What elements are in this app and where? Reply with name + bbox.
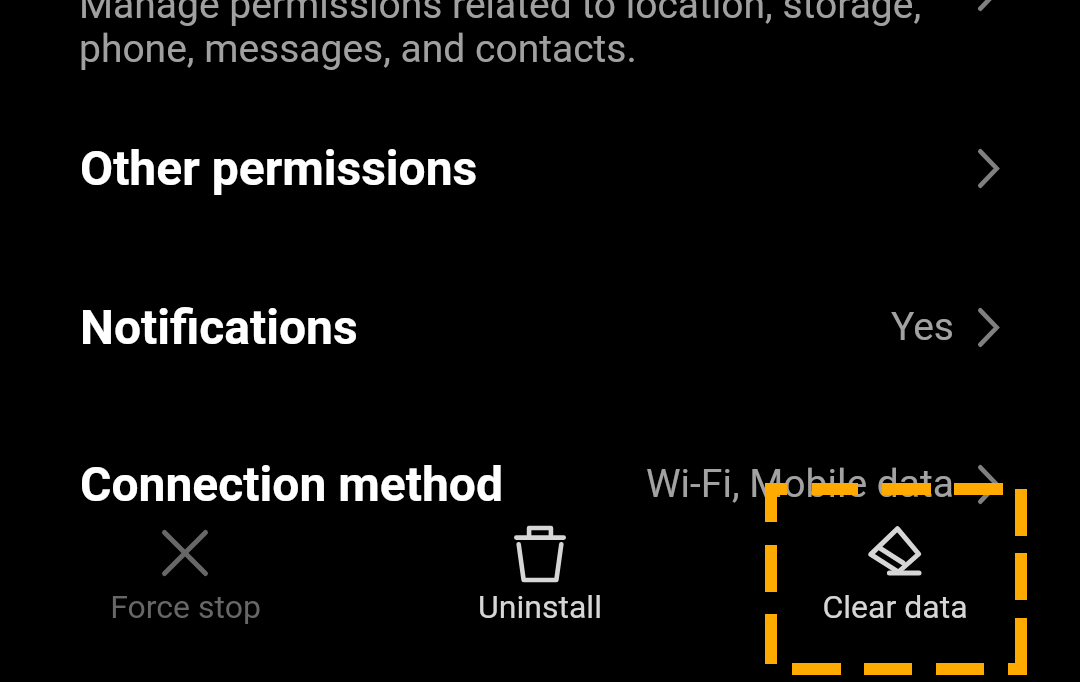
staticText: Clear data: [822, 588, 968, 626]
staticText: Other permissions: [80, 140, 478, 196]
staticText: Force stop: [110, 588, 261, 626]
staticText: Manage permissions related to location, …: [79, 0, 922, 71]
button[interactable]: Connection method: [0, 434, 1080, 534]
staticText: Uninstall: [478, 588, 602, 626]
button[interactable]: Permissions: [0, 0, 1080, 74]
staticText: Wi-Fi, Mobile data: [646, 461, 954, 507]
staticText: Yes: [891, 304, 954, 350]
staticText: Notifications: [80, 299, 358, 355]
button[interactable]: Force stop: [8, 522, 362, 682]
button[interactable]: Clear data: [718, 522, 1072, 682]
button[interactable]: Uninstall: [363, 522, 717, 682]
button[interactable]: Other permissions: [0, 118, 1080, 218]
button[interactable]: Notifications: [0, 277, 1080, 377]
staticText: Connection method: [80, 456, 504, 512]
